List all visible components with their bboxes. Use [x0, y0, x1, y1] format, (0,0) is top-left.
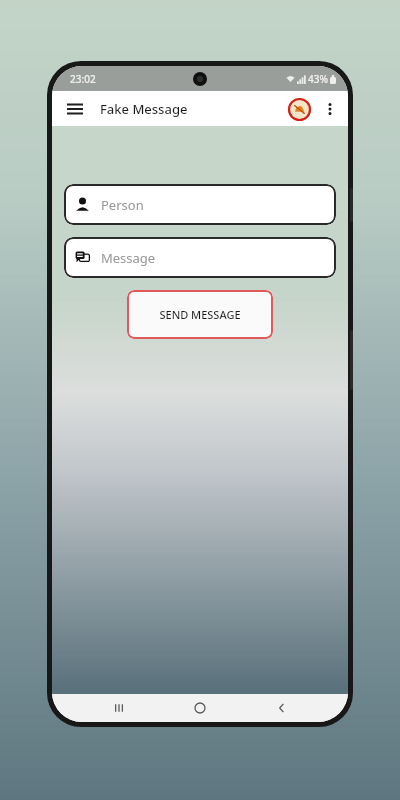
staticText: Fake Message	[100, 100, 188, 118]
button[interactable]: Home	[185, 694, 215, 722]
button[interactable]: Message	[64, 237, 336, 278]
staticText: Message	[101, 249, 156, 267]
button[interactable]: Notifications	[286, 96, 312, 122]
staticText: SEND MESSAGE	[159, 307, 241, 322]
button[interactable]: SEND MESSAGE	[127, 290, 273, 339]
staticText: 23:02	[70, 72, 96, 86]
button[interactable]: Person	[64, 184, 336, 225]
button[interactable]: Recent apps	[104, 694, 134, 722]
button[interactable]: Open navigation menu	[60, 94, 90, 124]
button[interactable]: More options	[316, 95, 344, 123]
button[interactable]: Back	[267, 694, 297, 722]
staticText: Person	[101, 196, 144, 214]
staticText: 43%	[308, 72, 328, 86]
